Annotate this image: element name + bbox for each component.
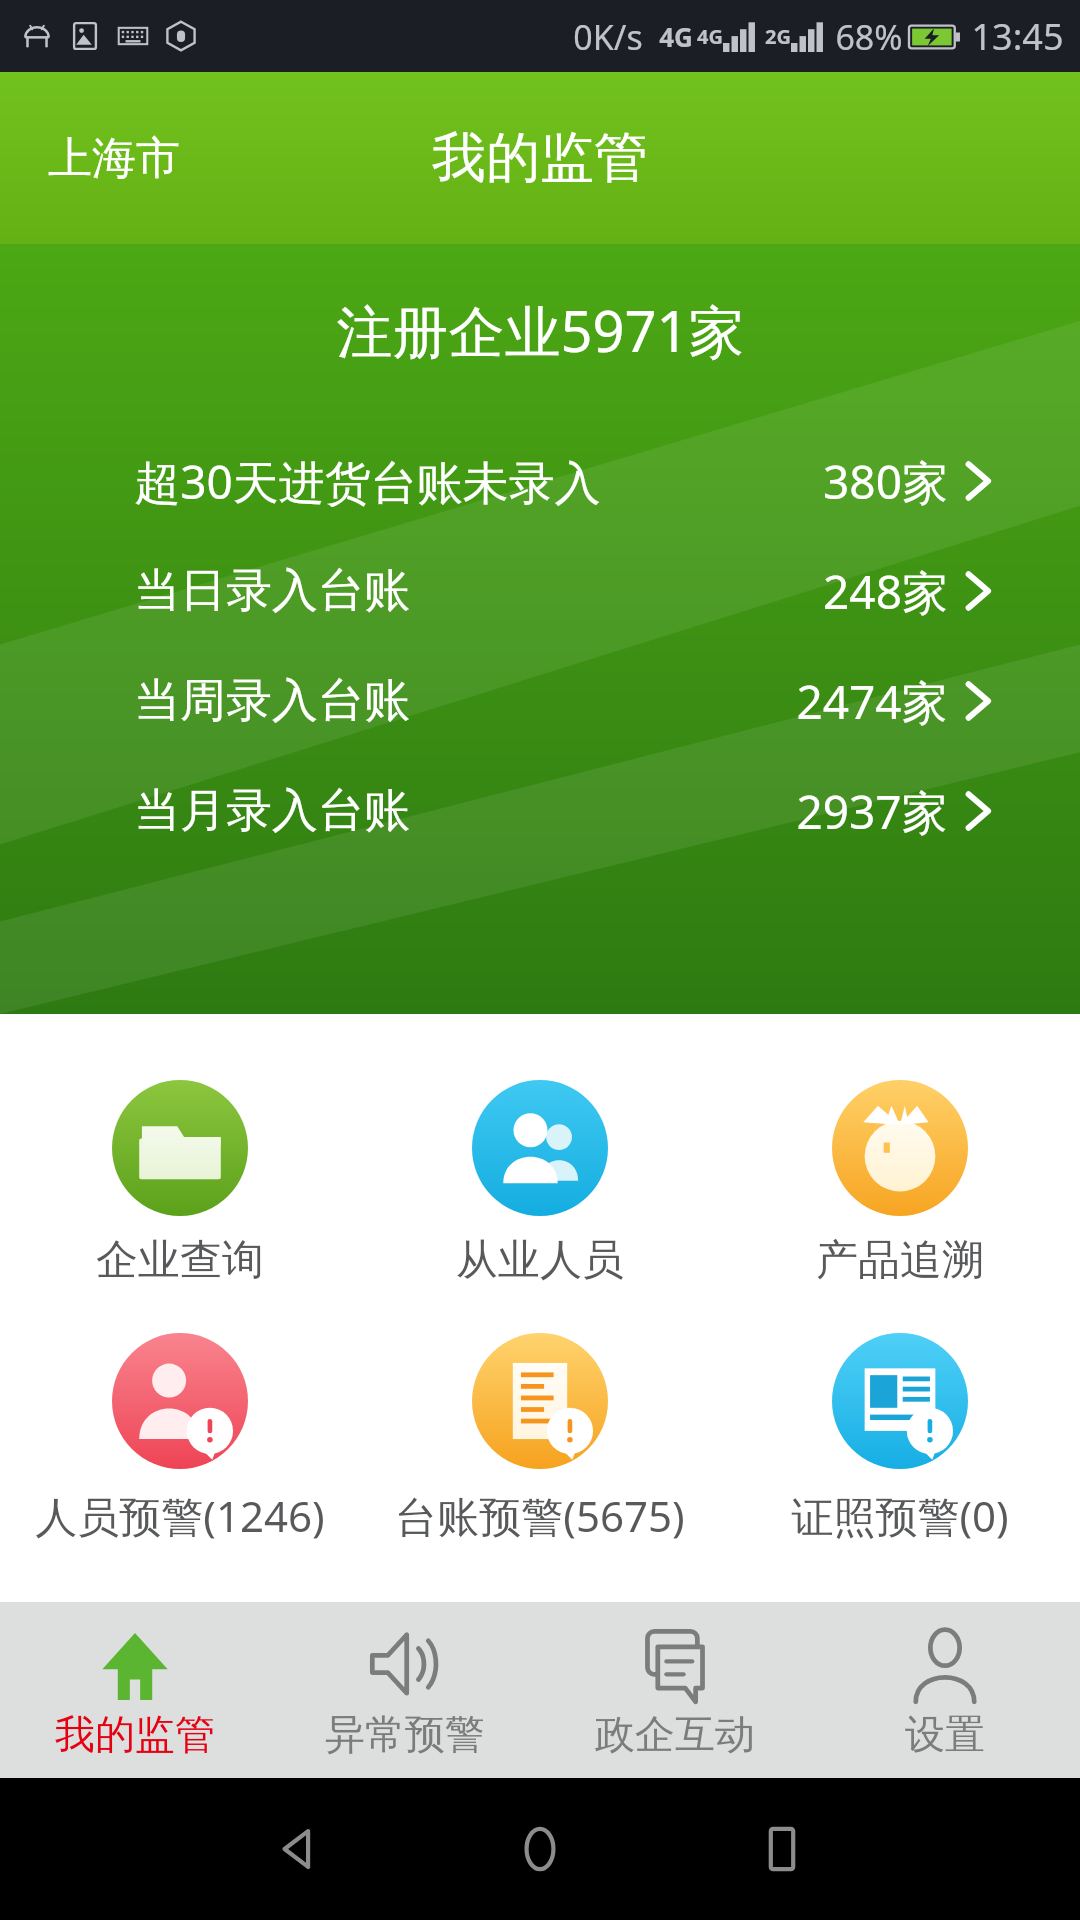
button[interactable]: Home (512, 1821, 568, 1877)
staticText: 2474家 (796, 670, 948, 733)
button[interactable]: 异常预警 (270, 1602, 540, 1778)
staticText: 我的监管 (55, 1709, 215, 1759)
staticText: 企业查询 (96, 1234, 264, 1287)
button[interactable]: 设置 (810, 1602, 1080, 1778)
staticText: 从业人员 (456, 1234, 624, 1287)
staticText: 380家 (823, 450, 948, 513)
staticText: 当月录入台账 (134, 782, 410, 840)
button[interactable]: Recents (754, 1821, 810, 1877)
staticText: 2G (765, 23, 791, 50)
staticText: 当周录入台账 (134, 672, 410, 730)
button[interactable]: 政企互动 (540, 1602, 810, 1778)
staticText: 设置 (905, 1709, 985, 1759)
button[interactable]: 上海市 (0, 119, 204, 198)
button[interactable]: 证照预警(0) (720, 1329, 1080, 1548)
button[interactable]: 当日录入台账 (0, 536, 1080, 646)
staticText: 4G (659, 19, 693, 54)
staticText: 证照预警(0) (791, 1487, 1009, 1544)
button[interactable]: 人员预警(1246) (0, 1329, 360, 1548)
staticText: 0K/s (573, 14, 643, 60)
button[interactable]: 台账预警(5675) (360, 1329, 720, 1548)
staticText: 2937家 (796, 780, 948, 843)
button[interactable]: 当周录入台账 (0, 646, 1080, 756)
staticText: 248家 (823, 560, 948, 623)
staticText: 13:45 (971, 12, 1064, 61)
staticText: 超30天进货台账未录入 (134, 450, 601, 513)
button[interactable]: 超30天进货台账未录入 (0, 426, 1080, 536)
button[interactable]: 企业查询 (0, 1076, 360, 1291)
button[interactable]: Back (270, 1821, 326, 1877)
staticText: 人员预警(1246) (35, 1487, 325, 1544)
button[interactable]: 当月录入台账 (0, 756, 1080, 866)
staticText: 4G (697, 23, 723, 50)
staticText: 当日录入台账 (134, 562, 410, 620)
staticText: 我的监管 (432, 124, 648, 192)
staticText: 68% (835, 14, 903, 60)
staticText: 异常预警 (325, 1709, 485, 1759)
staticText: 注册企业5971家 (336, 292, 745, 368)
staticText: 上海市 (48, 131, 180, 186)
staticText: 台账预警(5675) (395, 1487, 685, 1544)
staticText: 政企互动 (595, 1709, 755, 1759)
button[interactable]: 我的监管 (0, 1602, 270, 1778)
button[interactable]: 产品追溯 (720, 1076, 1080, 1291)
button[interactable]: 从业人员 (360, 1076, 720, 1291)
staticText: 产品追溯 (816, 1234, 984, 1287)
